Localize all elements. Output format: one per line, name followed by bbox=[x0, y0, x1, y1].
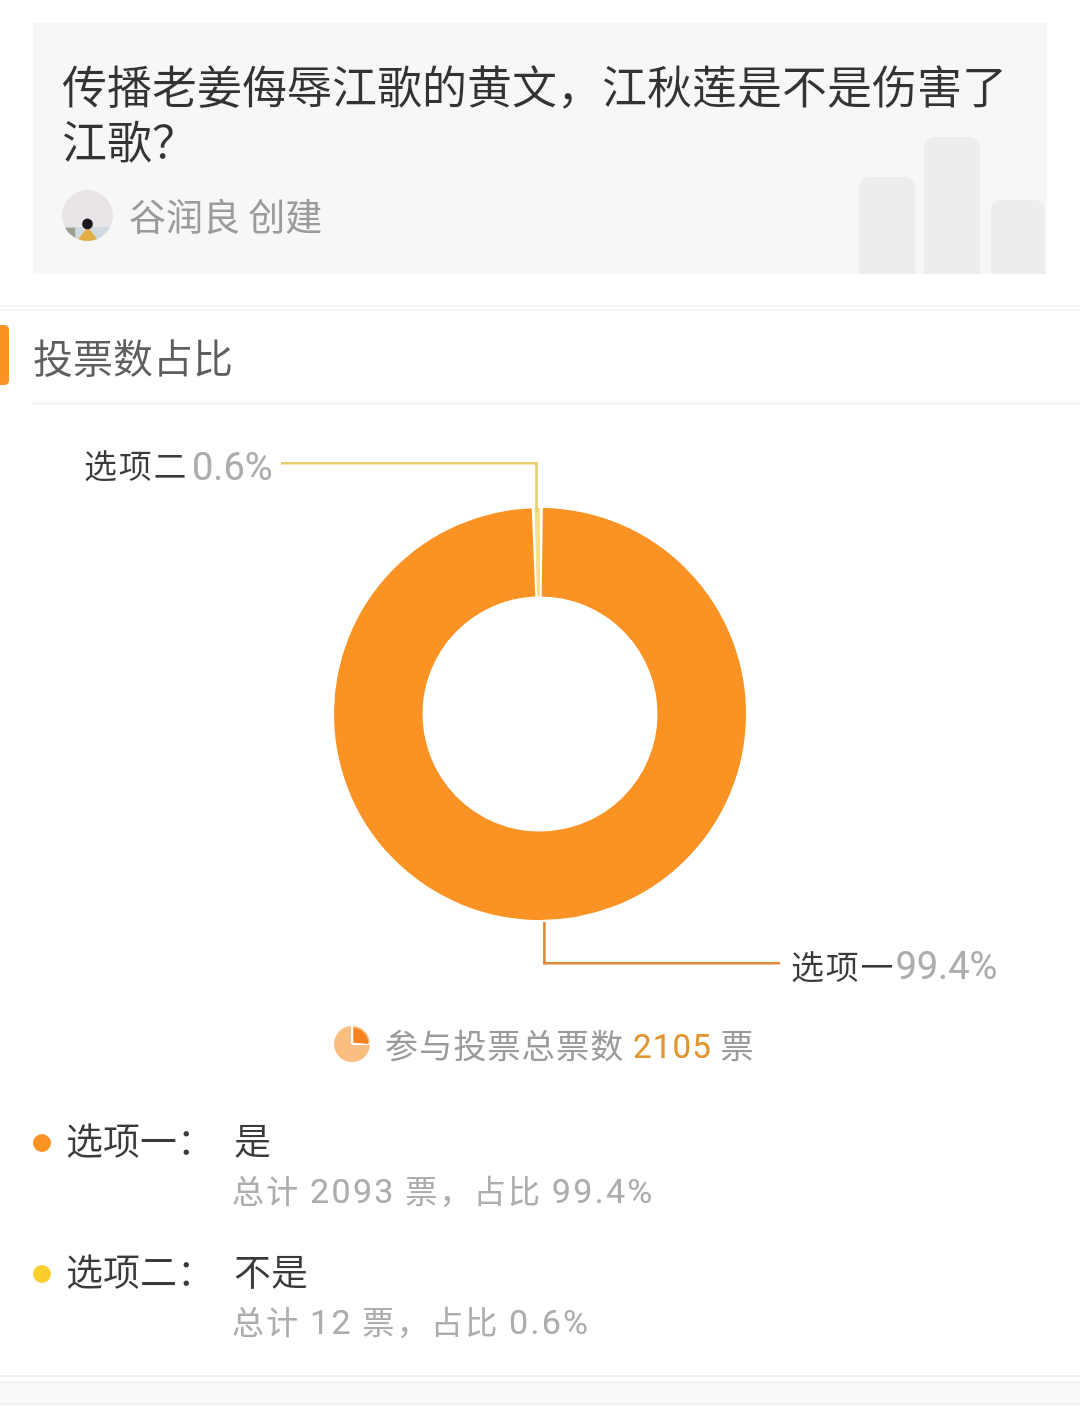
staticText: 谷润良 创建 bbox=[129, 188, 323, 242]
staticText: 参与投票总票数 2105 票 bbox=[385, 1020, 755, 1068]
staticText: 总计 12 票，占比 0.6% bbox=[232, 1297, 591, 1343]
staticText: 总计 2093 票，占比 99.4% bbox=[232, 1166, 655, 1212]
button[interactable]: Total votes bbox=[334, 1020, 755, 1068]
staticText: 选项二： bbox=[66, 1243, 214, 1297]
staticText: 是 bbox=[234, 1112, 271, 1166]
staticText: 选项一99.4% bbox=[791, 941, 998, 989]
staticText: 0.6% bbox=[192, 445, 273, 490]
staticText: 选项二 bbox=[84, 440, 189, 488]
button[interactable]: 传播老姜侮辱江歌的黄文，江秋莲是不是伤害了江歌？ bbox=[33, 23, 1047, 274]
button[interactable]: 选项二： bbox=[0, 1234, 1080, 1362]
button[interactable]: 选项一： bbox=[0, 1103, 1080, 1231]
staticText: 投票数占比 bbox=[33, 327, 233, 385]
other: Total votes bbox=[334, 1026, 370, 1062]
staticText: 传播老姜侮辱江歌的黄文，江秋莲是不是伤害了江歌？ bbox=[62, 52, 1018, 172]
staticText: 选项一： bbox=[66, 1112, 214, 1166]
staticText: 不是 bbox=[234, 1243, 308, 1297]
